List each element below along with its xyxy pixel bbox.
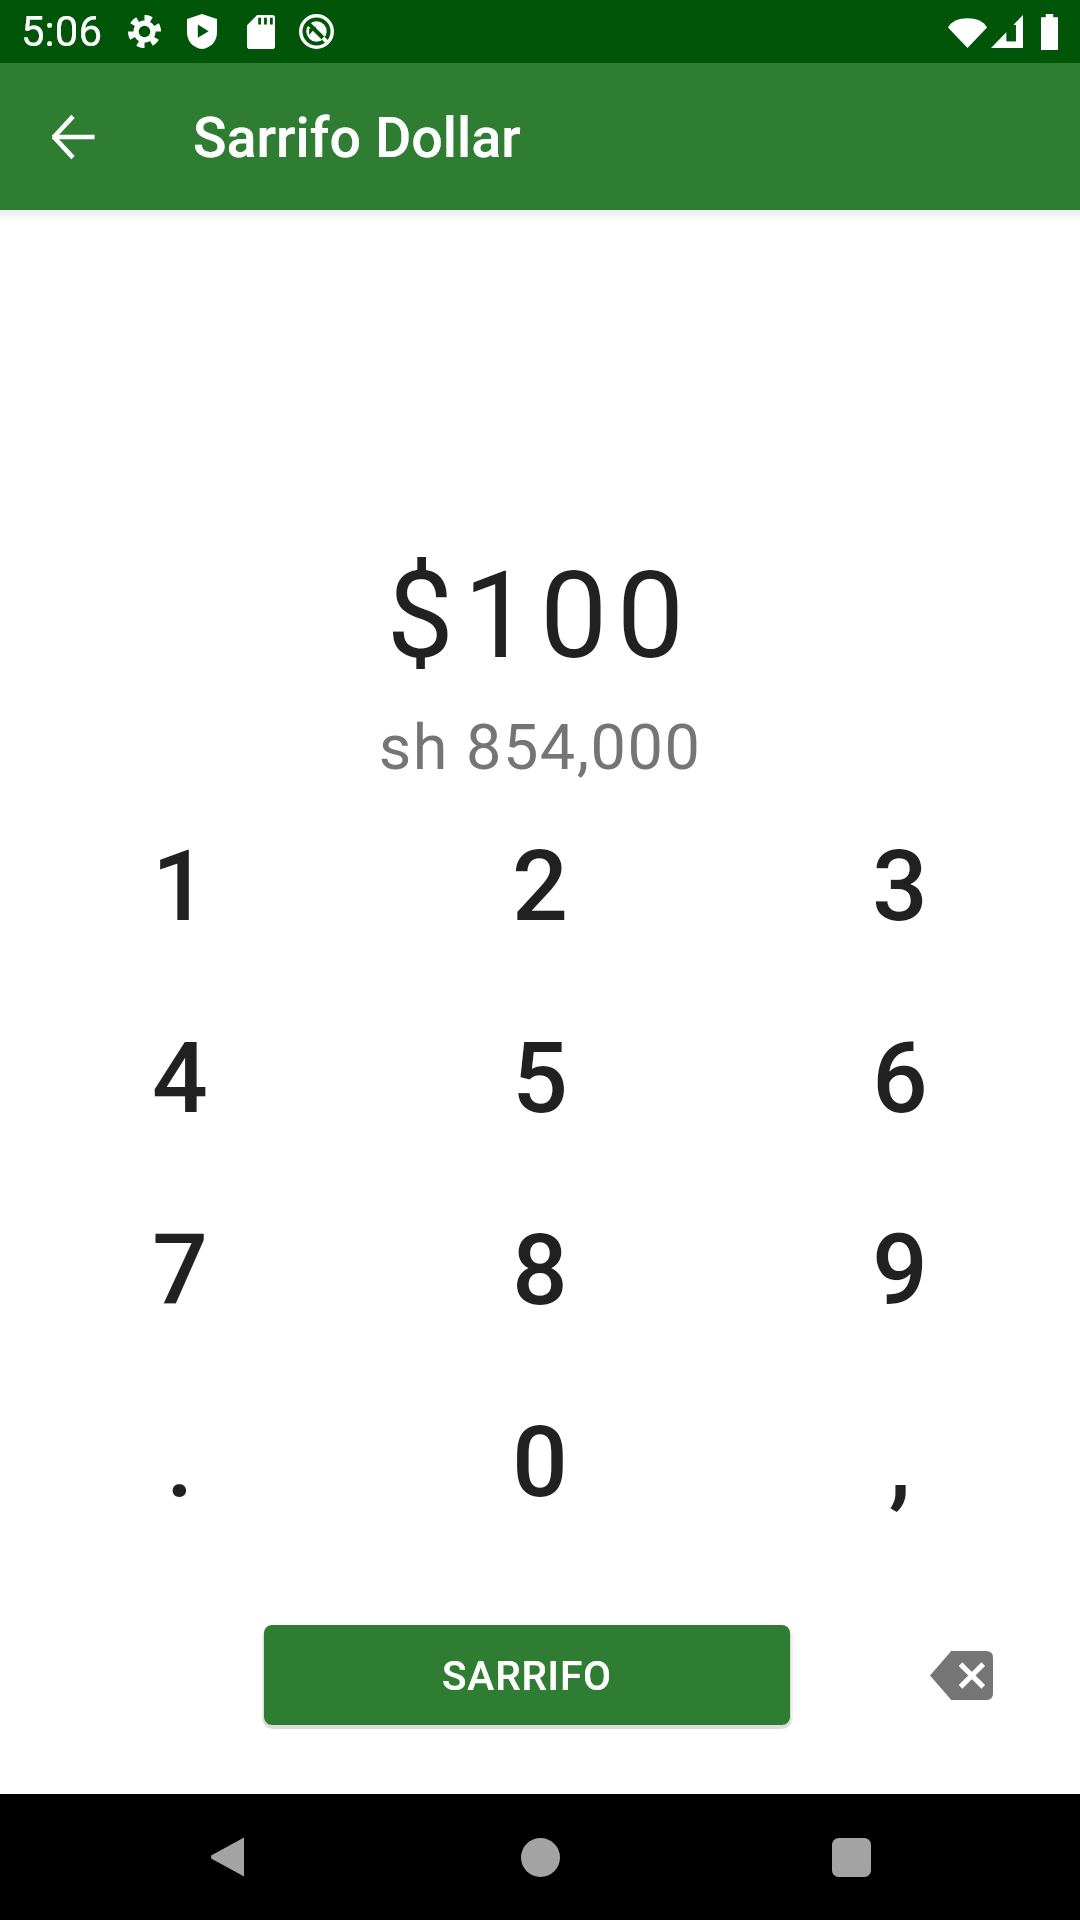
button[interactable]: Home — [477, 1794, 603, 1920]
staticText: 4 — [152, 1021, 208, 1136]
button[interactable]: 5 — [360, 982, 720, 1174]
button[interactable]: 2 — [360, 790, 720, 982]
staticText: 2 — [512, 829, 568, 944]
button[interactable]: . — [0, 1366, 360, 1558]
button[interactable]: 9 — [720, 1174, 1080, 1366]
staticText: sh 854,000 — [0, 711, 1080, 785]
button[interactable]: Backspace — [922, 1639, 1000, 1711]
staticText: 0 — [512, 1405, 568, 1520]
staticText: $100 — [0, 546, 1080, 687]
button[interactable]: 4 — [0, 982, 360, 1174]
staticText: 6 — [872, 1021, 928, 1136]
staticText: . — [166, 1405, 194, 1520]
button[interactable]: 7 — [0, 1174, 360, 1366]
button[interactable]: 1 — [0, 790, 360, 982]
button[interactable]: 3 — [720, 790, 1080, 982]
staticText: 9 — [872, 1213, 928, 1328]
staticText: 3 — [872, 829, 928, 944]
button[interactable]: 8 — [360, 1174, 720, 1366]
button[interactable]: Back — [162, 1794, 288, 1920]
button[interactable]: , — [720, 1366, 1080, 1558]
staticText: SARRIFO — [442, 1652, 612, 1699]
button[interactable]: Navigate up — [25, 89, 121, 185]
button[interactable]: Recent apps — [788, 1794, 914, 1920]
staticText: 7 — [152, 1213, 208, 1328]
staticText: 5 — [512, 1021, 568, 1136]
staticText: 5:06 — [21, 7, 102, 56]
staticText: 1 — [152, 829, 208, 944]
button[interactable]: SARRIFO — [264, 1625, 790, 1725]
button[interactable]: 6 — [720, 982, 1080, 1174]
staticText: , — [889, 1405, 911, 1520]
button[interactable]: 0 — [360, 1366, 720, 1558]
staticText: 8 — [512, 1213, 568, 1328]
staticText: Sarrifo Dollar — [193, 106, 521, 171]
